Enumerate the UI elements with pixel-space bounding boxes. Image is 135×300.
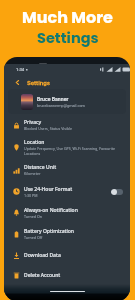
staticText: Bruce Banner [37, 96, 69, 102]
staticText: Turned On [24, 214, 42, 219]
button[interactable]: Back [13, 78, 22, 87]
button[interactable]: Privacy [4, 114, 130, 136]
staticText: brucebannermp@gmail.com [37, 103, 85, 107]
button[interactable]: Delete Account [4, 265, 130, 285]
staticText: 1:34 [16, 67, 25, 72]
staticText: Much More [22, 6, 113, 28]
staticText: Turned Off [24, 235, 43, 240]
staticText: Blocked Users, Status Visible [24, 126, 73, 131]
staticText: Settings [27, 79, 50, 86]
staticText: Use 24-Hour Format [24, 186, 73, 193]
staticText: Battery Optimization [24, 228, 74, 235]
button[interactable]: Bruce Banner [8, 89, 126, 114]
button[interactable]: Download Data [4, 245, 130, 265]
staticText: Always-on Notification [24, 207, 78, 214]
button[interactable]: Toggle 24-hour format [111, 189, 123, 195]
button[interactable]: Use 24-Hour Format [4, 181, 130, 202]
staticText: Privacy [24, 119, 42, 126]
button[interactable]: Always-on Notification [4, 202, 130, 223]
staticText: Kilometer [24, 171, 41, 176]
staticText: Update Frequency, Use GPS, Wi-Fi Scannin… [24, 146, 115, 156]
staticText: Location [24, 139, 45, 146]
button[interactable]: Battery Optimization [4, 223, 130, 245]
staticText: 1:30 PM [24, 193, 38, 198]
button[interactable]: Location [4, 136, 130, 159]
staticText: Distance Unit [24, 164, 57, 171]
staticText: Delete Account [24, 272, 61, 279]
button[interactable]: Distance Unit [4, 159, 130, 181]
staticText: Download Data [24, 252, 61, 259]
staticText: Settings [37, 28, 99, 48]
